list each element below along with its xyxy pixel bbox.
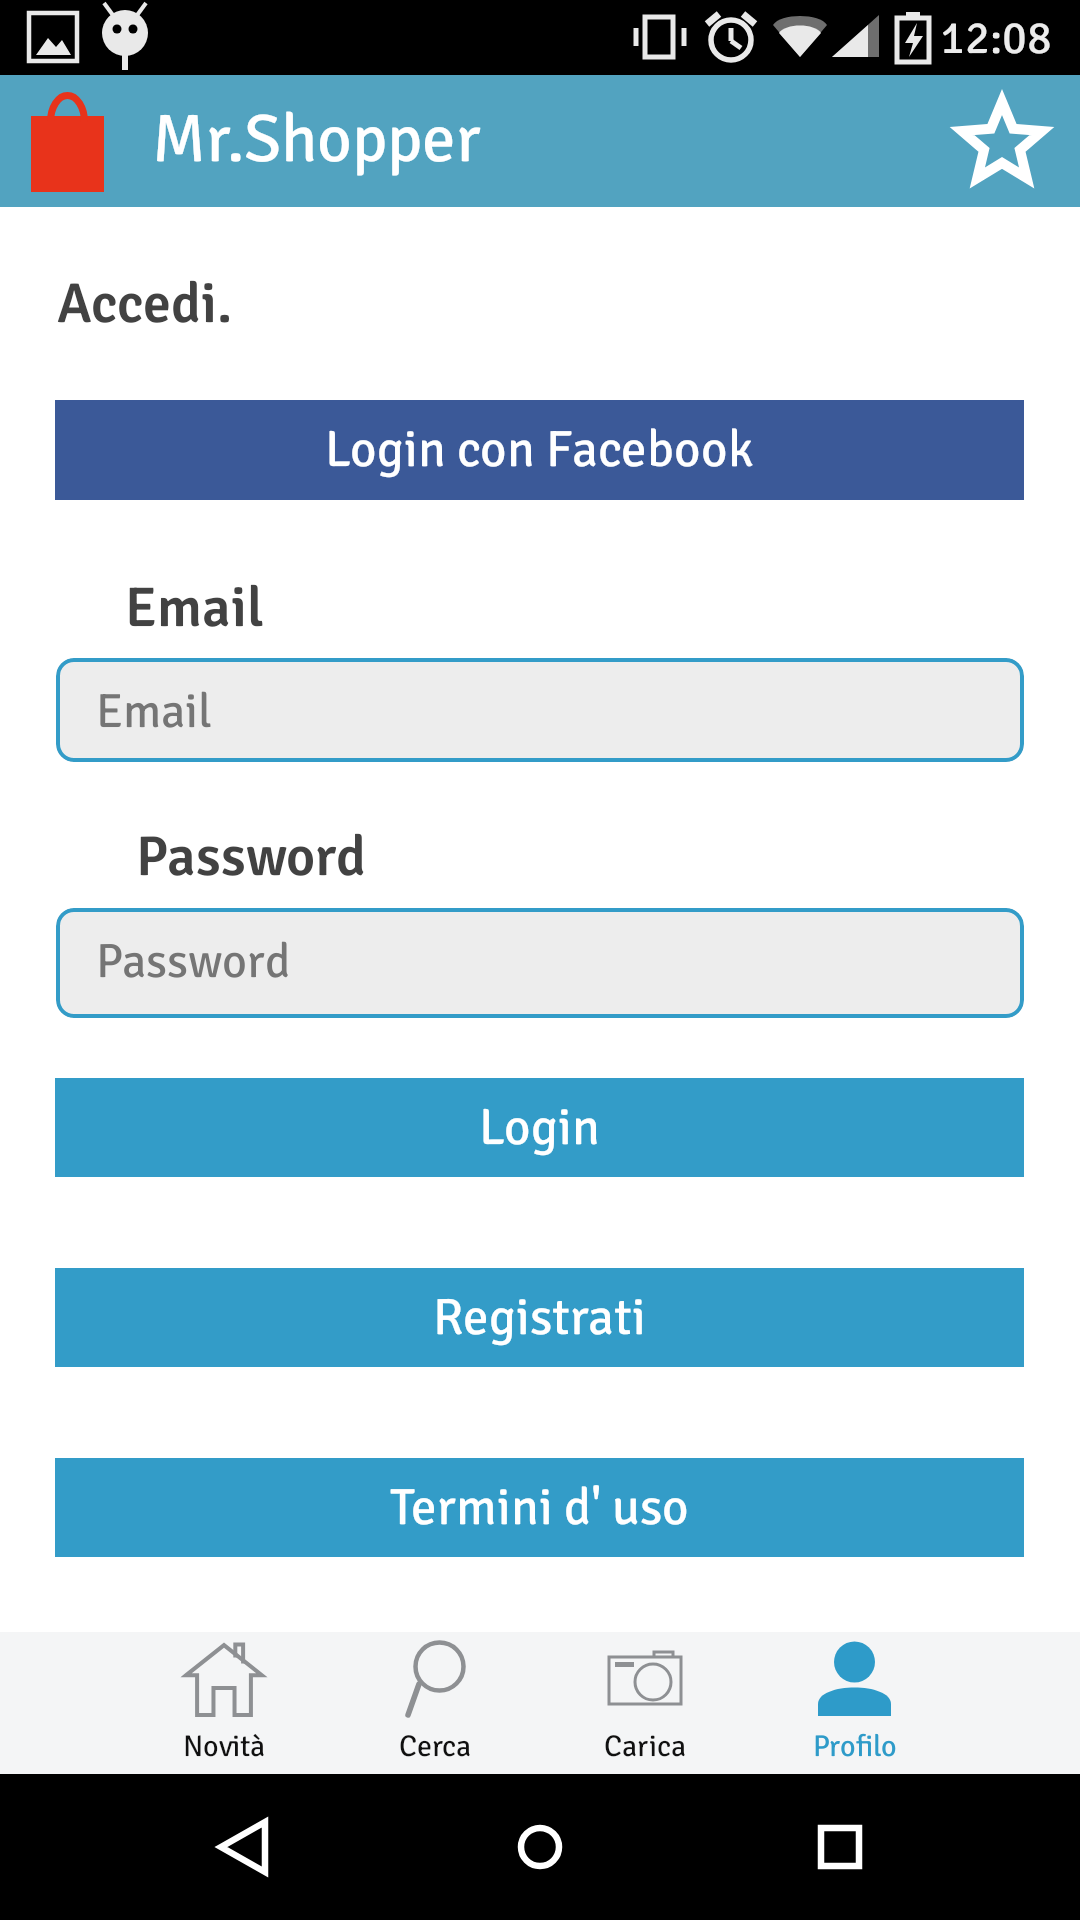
button[interactable] <box>55 1458 1024 1557</box>
button[interactable] <box>55 400 1024 500</box>
button[interactable] <box>119 1632 329 1774</box>
button[interactable] <box>540 1632 750 1774</box>
button[interactable] <box>750 1632 960 1774</box>
button[interactable] <box>55 1078 1024 1177</box>
button[interactable] <box>56 658 1024 762</box>
button[interactable] <box>330 1632 540 1774</box>
button[interactable]: Indietro <box>182 1774 302 1920</box>
button[interactable]: Preferiti <box>942 84 1062 204</box>
button[interactable]: Panoramica <box>780 1774 900 1920</box>
button[interactable] <box>56 908 1024 1018</box>
button[interactable]: Home <box>480 1774 600 1920</box>
button[interactable] <box>55 1268 1024 1367</box>
